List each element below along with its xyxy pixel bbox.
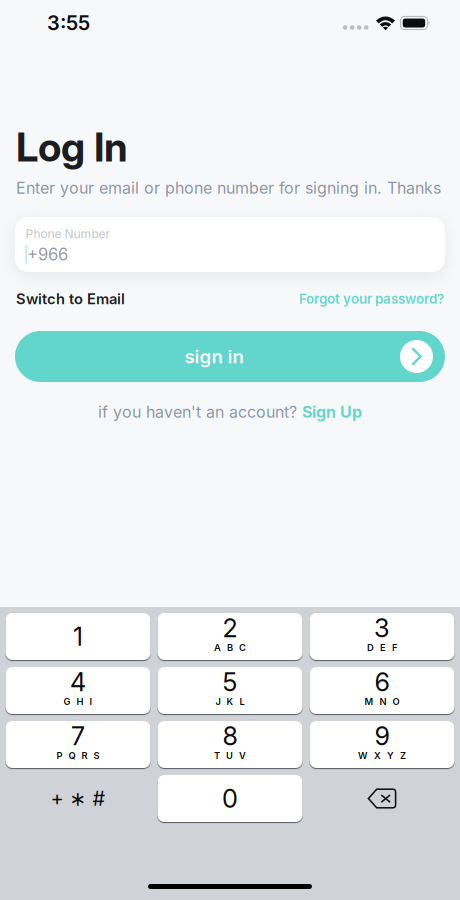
staticText: 6 [374, 667, 389, 697]
staticText: +966 [27, 244, 68, 265]
staticText: 9 [374, 721, 389, 751]
staticText: A B C [214, 642, 246, 653]
staticText: 8 [222, 721, 237, 751]
button[interactable]: Symbols [5, 775, 150, 822]
staticText: Switch to Email [16, 290, 125, 308]
staticText: + ∗ # [50, 786, 105, 811]
button[interactable]: 3 [309, 613, 454, 660]
button[interactable]: Phone Number [15, 217, 445, 272]
button[interactable]: 1 [5, 613, 150, 660]
button[interactable]: sign in [15, 331, 445, 382]
staticText: Log In [16, 123, 128, 171]
button[interactable]: 9 [309, 721, 454, 768]
staticText: Sign Up [302, 402, 362, 422]
staticText: 3 [374, 613, 390, 643]
staticText: 5 [222, 667, 237, 697]
staticText: P Q R S [56, 750, 99, 761]
staticText: T U V [214, 750, 246, 761]
staticText: Enter your email or phone number for sig… [16, 178, 441, 198]
button[interactable]: 7 [5, 721, 150, 768]
staticText: if you haven't an account? [98, 402, 297, 422]
staticText: 3:55 [47, 11, 90, 35]
staticText: sign in [184, 345, 243, 368]
staticText: 2 [222, 613, 237, 643]
button[interactable]: 2 [157, 613, 302, 660]
button[interactable]: Delete [309, 775, 454, 822]
staticText: 1 [73, 621, 83, 652]
staticText: M N O [364, 696, 399, 707]
staticText: 7 [71, 721, 85, 751]
staticText: D E F [367, 642, 397, 653]
button[interactable]: Sign Up [302, 402, 362, 422]
button[interactable]: 5 [157, 667, 302, 714]
button[interactable]: Forgot your password? [299, 289, 444, 309]
button[interactable]: 0 [157, 775, 302, 822]
staticText: J K L [215, 696, 244, 707]
staticText: W X Y Z [358, 750, 406, 761]
staticText: G H I [63, 696, 92, 707]
staticText: Forgot your password? [299, 291, 444, 307]
button[interactable]: 6 [309, 667, 454, 714]
button[interactable]: 4 [5, 667, 150, 714]
staticText: Phone Number [25, 227, 110, 241]
staticText: 0 [222, 783, 238, 814]
button[interactable]: Switch to Email [16, 289, 125, 309]
button[interactable]: 8 [157, 721, 302, 768]
staticText: 4 [70, 667, 86, 697]
